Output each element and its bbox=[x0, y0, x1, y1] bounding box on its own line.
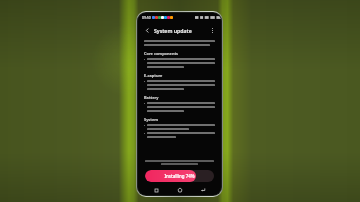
button[interactable]: Installing 74% bbox=[145, 170, 214, 182]
button[interactable]: More options bbox=[207, 25, 217, 35]
staticText: Core components bbox=[144, 51, 179, 56]
staticText: E-capture bbox=[144, 73, 163, 78]
staticText: Installing 74% bbox=[164, 173, 195, 179]
button[interactable]: Recents bbox=[151, 185, 161, 195]
staticText: Battery bbox=[144, 95, 159, 100]
button[interactable]: Home bbox=[175, 185, 185, 195]
button[interactable]: Back bbox=[142, 25, 152, 35]
staticText: System update bbox=[154, 27, 192, 34]
button[interactable]: Back bbox=[198, 185, 208, 195]
staticText: System bbox=[144, 117, 159, 122]
staticText: 09:50 bbox=[142, 15, 151, 20]
